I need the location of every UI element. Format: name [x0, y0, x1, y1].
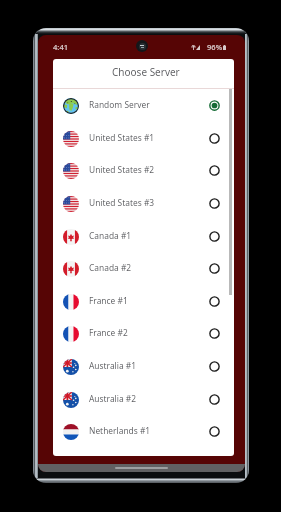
button[interactable]: France #2 — [53, 317, 234, 350]
staticText: Random Server — [89, 99, 150, 110]
button[interactable]: France #1 — [53, 285, 234, 318]
button[interactable]: United States #2 — [53, 154, 234, 187]
staticText: Canada #2 — [89, 262, 132, 273]
button[interactable]: Canada #1 — [53, 220, 234, 253]
button[interactable]: Australia #1 — [53, 350, 234, 383]
button[interactable]: Canada #2 — [53, 252, 234, 285]
staticText: 4:41 — [53, 42, 69, 52]
staticText: 96% — [207, 42, 223, 52]
staticText: Australia #1 — [89, 360, 137, 371]
staticText: Australia #2 — [89, 393, 137, 404]
staticText: Netherlands #1 — [89, 425, 151, 436]
staticText: United States #3 — [89, 197, 155, 208]
button[interactable]: Random Server — [53, 89, 234, 122]
button[interactable]: Netherlands #1 — [53, 415, 234, 448]
staticText: France #1 — [89, 295, 128, 306]
button[interactable]: United States #1 — [53, 122, 234, 155]
staticText: United States #1 — [89, 132, 155, 143]
button[interactable]: United States #3 — [53, 187, 234, 220]
staticText: France #2 — [89, 327, 128, 338]
staticText: Canada #1 — [89, 230, 132, 241]
button[interactable]: Australia #2 — [53, 383, 234, 416]
staticText: United States #2 — [89, 164, 155, 175]
staticText: Choose Server — [112, 65, 180, 79]
